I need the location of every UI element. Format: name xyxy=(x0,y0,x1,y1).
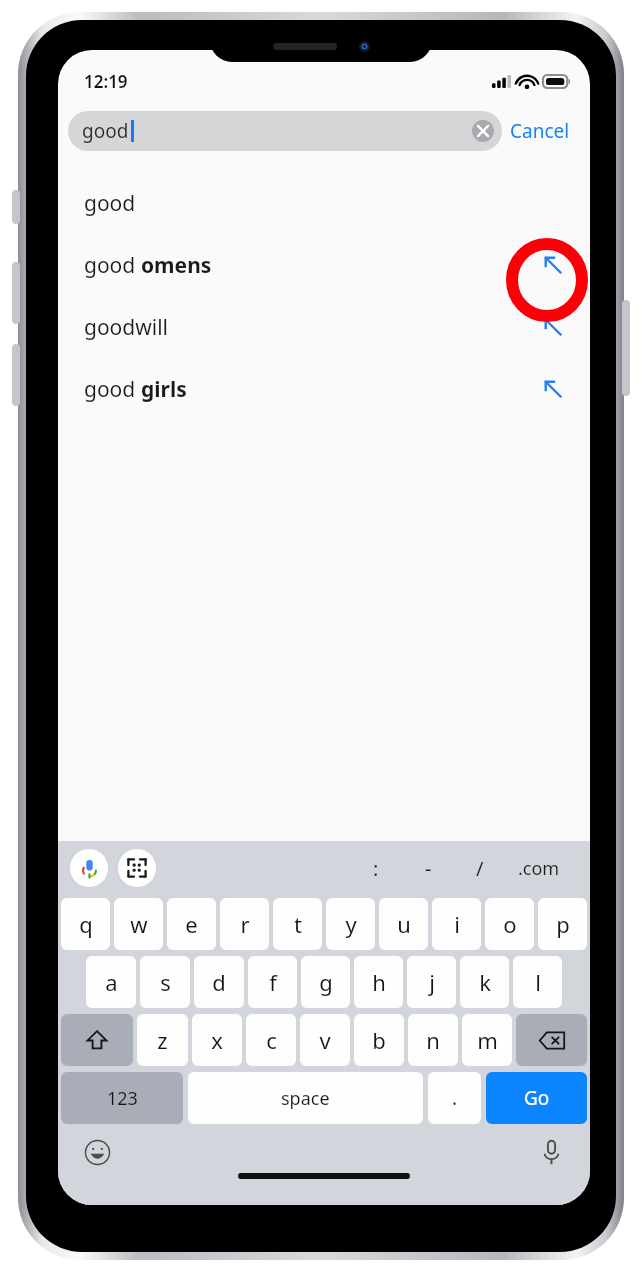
button[interactable]: r xyxy=(220,898,269,950)
staticText: f xyxy=(269,967,277,997)
button[interactable]: o xyxy=(485,898,534,950)
button[interactable]: q xyxy=(61,898,110,950)
staticText: k xyxy=(479,967,491,997)
staticText: 123 xyxy=(107,1086,138,1111)
button[interactable]: .com xyxy=(506,841,572,895)
button[interactable]: d xyxy=(194,956,244,1008)
button[interactable]: Voice typing xyxy=(534,1135,568,1169)
button[interactable]: x xyxy=(192,1014,242,1066)
button[interactable]: w xyxy=(114,898,163,950)
staticText: omens xyxy=(141,251,212,280)
button[interactable]: z xyxy=(137,1014,188,1066)
button[interactable]: Clear text xyxy=(472,120,494,142)
staticText: i xyxy=(454,909,460,939)
button[interactable]: u xyxy=(379,898,428,950)
button[interactable]: good xyxy=(68,111,502,151)
staticText: g xyxy=(319,967,333,997)
button[interactable]: p xyxy=(538,898,587,950)
staticText: w xyxy=(130,909,148,939)
staticText: girls xyxy=(141,375,187,404)
staticText: good xyxy=(84,375,141,404)
staticText: good xyxy=(84,251,141,280)
staticText: b xyxy=(372,1025,386,1055)
button[interactable]: i xyxy=(432,898,481,950)
button[interactable]: Scan with camera xyxy=(118,849,156,887)
staticText: r xyxy=(240,909,250,939)
staticText: - xyxy=(425,855,432,882)
staticText: : xyxy=(373,855,379,882)
button[interactable]: a xyxy=(86,956,136,1008)
staticText: a xyxy=(105,967,118,997)
button[interactable]: good xyxy=(58,234,590,296)
staticText: l xyxy=(535,967,541,997)
button[interactable]: Insert suggestion xyxy=(538,250,568,280)
button[interactable]: h xyxy=(354,956,403,1008)
button[interactable]: e xyxy=(167,898,216,950)
button[interactable]: g xyxy=(301,956,350,1008)
button[interactable]: good xyxy=(58,358,590,420)
staticText: y xyxy=(345,909,357,939)
staticText: u xyxy=(397,909,411,939)
staticText: e xyxy=(185,909,198,939)
staticText: n xyxy=(426,1025,440,1055)
button[interactable]: - xyxy=(402,841,454,895)
staticText: d xyxy=(212,967,226,997)
button[interactable]: goodwill xyxy=(58,296,590,358)
button[interactable]: t xyxy=(273,898,322,950)
button[interactable]: Cancel xyxy=(502,112,578,150)
button[interactable]: l xyxy=(513,956,562,1008)
staticText: space xyxy=(281,1086,330,1111)
button[interactable]: y xyxy=(326,898,375,950)
button[interactable]: n xyxy=(408,1014,458,1066)
staticText: t xyxy=(294,909,302,939)
button[interactable]: f xyxy=(248,956,297,1008)
staticText: good xyxy=(84,189,136,218)
staticText: o xyxy=(503,909,517,939)
button[interactable]: Period xyxy=(428,1072,481,1124)
button[interactable]: Voice input xyxy=(70,849,108,887)
staticText: / xyxy=(476,855,484,882)
staticText: Cancel xyxy=(510,118,570,144)
button[interactable]: m xyxy=(462,1014,512,1066)
button[interactable]: s xyxy=(140,956,190,1008)
button[interactable]: b xyxy=(354,1014,404,1066)
staticText: . xyxy=(452,1085,458,1111)
button[interactable]: / xyxy=(454,841,506,895)
button[interactable]: Space xyxy=(188,1072,423,1124)
button[interactable]: c xyxy=(246,1014,296,1066)
button[interactable]: Emoji xyxy=(80,1135,114,1169)
staticText: p xyxy=(556,909,570,939)
button[interactable]: Go xyxy=(486,1072,587,1124)
staticText: 12:19 xyxy=(84,70,128,93)
staticText: z xyxy=(157,1025,168,1055)
staticText: c xyxy=(266,1025,277,1055)
button[interactable]: good xyxy=(58,172,590,234)
staticText: h xyxy=(372,967,386,997)
button[interactable]: Insert suggestion xyxy=(538,374,568,404)
button[interactable]: Insert suggestion xyxy=(538,312,568,342)
button[interactable]: : xyxy=(350,841,402,895)
staticText: Go xyxy=(524,1085,550,1111)
staticText: v xyxy=(319,1025,331,1055)
staticText: j xyxy=(429,967,435,997)
button[interactable]: v xyxy=(300,1014,350,1066)
staticText: q xyxy=(79,909,93,939)
button[interactable]: Shift xyxy=(61,1014,133,1066)
button[interactable]: j xyxy=(407,956,456,1008)
staticText: m xyxy=(477,1025,498,1055)
button[interactable]: Backspace xyxy=(516,1014,587,1066)
staticText: x xyxy=(211,1025,223,1055)
staticText: .com xyxy=(518,856,560,881)
staticText: goodwill xyxy=(84,313,168,342)
staticText: good xyxy=(82,118,129,144)
button[interactable]: k xyxy=(460,956,509,1008)
staticText: s xyxy=(160,967,171,997)
button[interactable]: Numbers xyxy=(61,1072,183,1124)
